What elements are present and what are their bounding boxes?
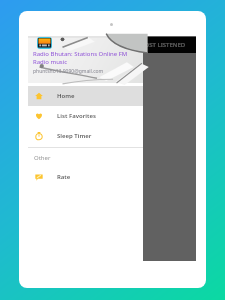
- other: Favorites: [35, 112, 43, 120]
- staticText: Radio Bhutan: Stations Online FM Radio m…: [33, 50, 128, 66]
- other: Home: [35, 92, 43, 100]
- button[interactable]: Favorites: [28, 106, 143, 126]
- other: Sleep Timer: [35, 132, 43, 140]
- button[interactable]: Radio Bhutan: Stations Online FM Radio m…: [28, 36, 143, 261]
- staticText: Rate: [57, 173, 71, 181]
- staticText: Sleep Timer: [57, 132, 92, 140]
- staticText: phuntsho13.9090@gmail.com: [33, 68, 104, 75]
- button[interactable]: Home: [28, 86, 143, 106]
- staticText: Other: [34, 154, 51, 162]
- staticText: MOST LISTENED: [139, 41, 186, 49]
- other: Rate: [35, 173, 43, 181]
- button[interactable]: Sleep Timer: [28, 126, 143, 146]
- staticText: Home: [57, 92, 75, 100]
- button[interactable]: Rate: [28, 167, 143, 187]
- staticText: List Favorites: [57, 112, 96, 120]
